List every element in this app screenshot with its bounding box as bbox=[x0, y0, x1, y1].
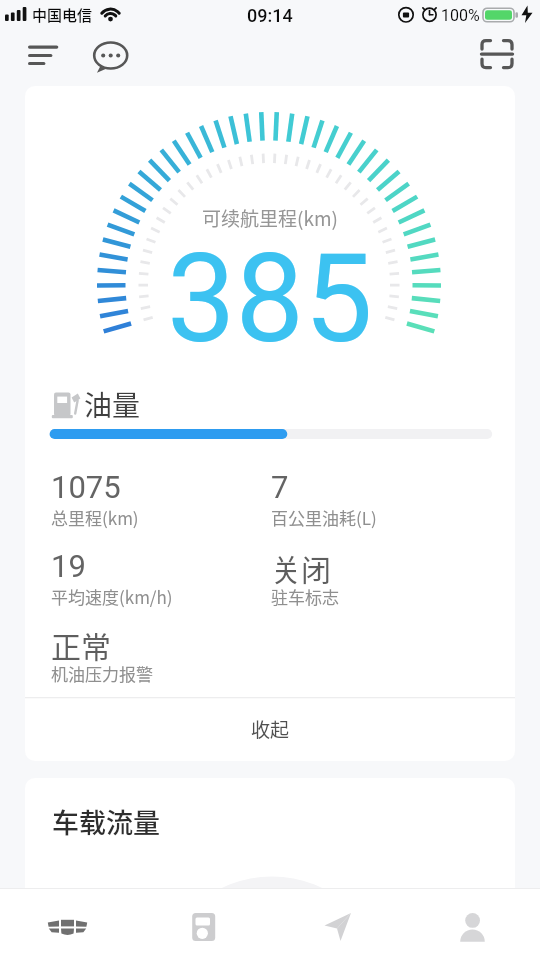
button[interactable] bbox=[0, 888, 135, 960]
staticText: 正常 bbox=[51, 623, 111, 663]
staticText: 09:14 bbox=[247, 5, 293, 26]
staticText: 19 bbox=[51, 548, 86, 584]
staticText: 车载流量 bbox=[52, 802, 160, 841]
staticText: 驻车标志 bbox=[271, 584, 339, 609]
staticText: 收起 bbox=[251, 715, 290, 743]
staticText: 1075 bbox=[51, 469, 121, 505]
staticText: 油量 bbox=[84, 384, 141, 424]
button[interactable]: 收起 bbox=[25, 698, 515, 760]
staticText: 100% bbox=[441, 6, 480, 25]
button[interactable] bbox=[135, 888, 270, 960]
staticText: 关闭 bbox=[271, 546, 331, 586]
staticText: 百公里油耗(L) bbox=[271, 505, 377, 530]
button[interactable] bbox=[478, 36, 518, 76]
staticText: 机油压力报警 bbox=[51, 661, 153, 686]
button[interactable] bbox=[270, 888, 405, 960]
staticText: 总里程(km) bbox=[51, 505, 139, 530]
button[interactable] bbox=[16, 36, 68, 76]
staticText: 385 bbox=[167, 228, 373, 368]
staticText: 平均速度(km/h) bbox=[51, 584, 173, 609]
button[interactable] bbox=[88, 34, 134, 78]
staticText: 7 bbox=[271, 469, 289, 505]
button[interactable] bbox=[405, 888, 540, 960]
staticText: 可续航里程(km) bbox=[202, 204, 338, 232]
staticText: 中国电信 bbox=[32, 4, 93, 26]
